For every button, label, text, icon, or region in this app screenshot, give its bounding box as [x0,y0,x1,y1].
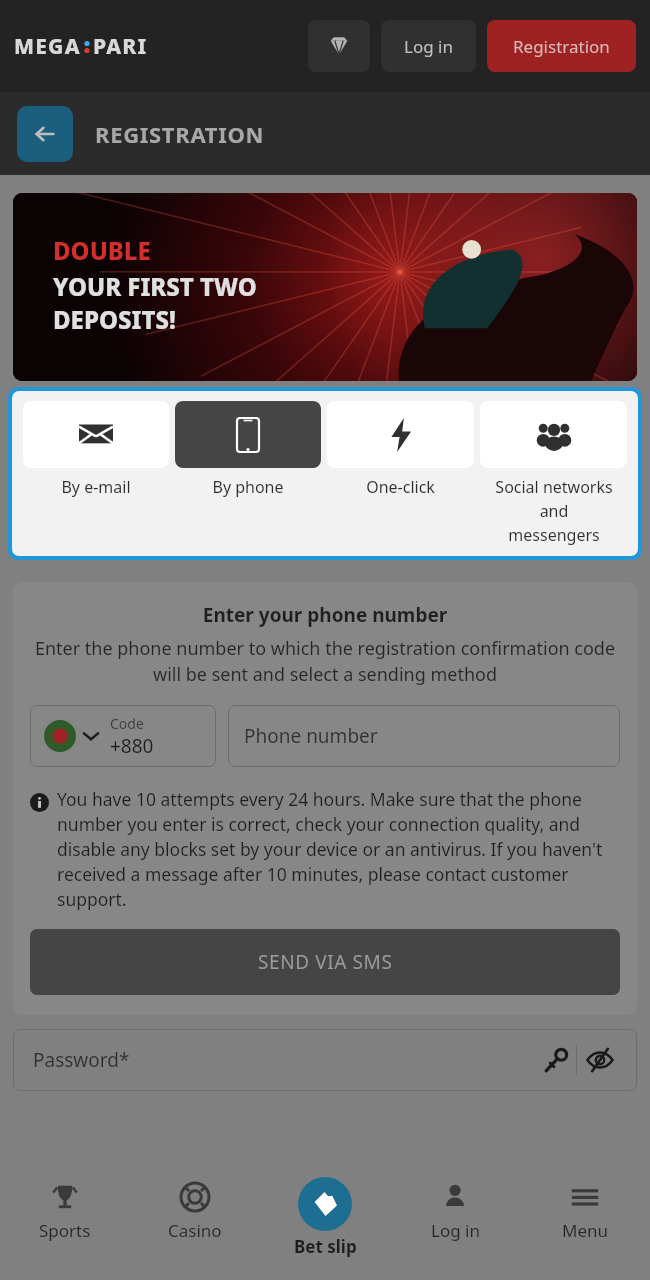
staticText: Log in [404,35,453,58]
staticText: Registration [513,35,610,58]
staticText: REGISTRATION [95,119,265,149]
staticText: Bet slip [294,1235,357,1258]
button[interactable]: Log in [381,20,476,72]
button[interactable]: Code [30,705,216,767]
button[interactable]: Bet slip [260,1165,390,1280]
staticText: Phone number [244,723,378,749]
staticText: Password* [33,1047,130,1073]
staticText: Sports [39,1219,91,1242]
staticText: DOUBLE [53,234,151,267]
button[interactable]: Bonuses [308,20,370,72]
staticText: Casino [168,1219,222,1242]
button[interactable]: DOUBLE [13,193,637,381]
staticText: Social networks and messengers [495,476,613,546]
button[interactable]: Show password [577,1037,623,1083]
staticText: MEGA [14,32,81,61]
staticText: Code [110,714,144,733]
button[interactable]: Casino [130,1165,260,1280]
button[interactable]: Back [17,106,73,162]
staticText: SEND VIA SMS [258,949,393,975]
staticText: YOUR FIRST TWO DEPOSITS! [53,270,257,336]
button[interactable]: Log in [390,1165,520,1280]
button[interactable]: SEND VIA SMS [30,929,620,995]
staticText: Enter your phone number [30,602,620,628]
staticText: Log in [431,1219,480,1242]
button[interactable]: Sports [0,1165,130,1280]
staticText: One-click [366,476,435,498]
button[interactable]: One-click [327,401,474,498]
staticText: Enter the phone number to which the regi… [30,636,620,687]
staticText: You have 10 attempts every 24 hours. Mak… [57,787,620,911]
staticText: PARI [93,32,148,61]
button[interactable]: By e-mail [23,401,169,498]
staticText: By e-mail [61,476,131,498]
button[interactable]: Phone number [228,705,620,767]
button[interactable]: Generate password [536,1040,576,1080]
staticText: By phone [212,476,284,498]
staticText: +880 [110,733,154,759]
button[interactable]: Social networks and messengers [480,401,627,546]
button[interactable]: Registration [487,20,636,72]
button[interactable]: Password* [13,1029,637,1091]
button[interactable]: By phone [175,401,321,498]
button[interactable]: Menu [520,1165,650,1280]
staticText: Menu [562,1219,609,1242]
